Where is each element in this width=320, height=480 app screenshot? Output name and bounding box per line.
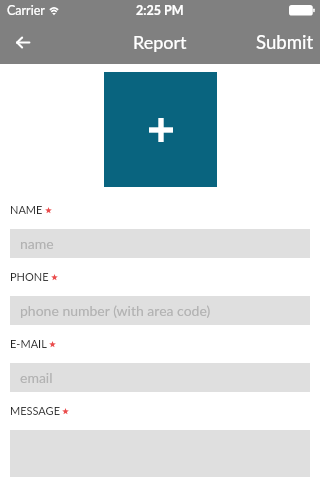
staticText: MESSAGE <box>10 404 60 417</box>
staticText: Carrier <box>7 3 45 18</box>
button[interactable]: phone number (with area code) <box>10 296 310 325</box>
button[interactable]: Back <box>0 20 44 64</box>
button[interactable]: Add photo <box>104 72 217 187</box>
staticText: PHONE <box>10 270 49 283</box>
staticText: Submit <box>256 31 314 53</box>
staticText: E-MAIL <box>10 337 47 350</box>
staticText: Report <box>133 31 187 53</box>
staticText: phone number (with area code) <box>20 302 211 319</box>
button[interactable]: name <box>10 229 310 258</box>
staticText: email <box>20 369 53 386</box>
staticText: NAME <box>10 203 43 216</box>
button[interactable]: email <box>10 363 310 392</box>
button[interactable]: Submit <box>250 20 320 64</box>
staticText: name <box>20 235 54 252</box>
staticText: 2:25 PM <box>136 3 184 18</box>
